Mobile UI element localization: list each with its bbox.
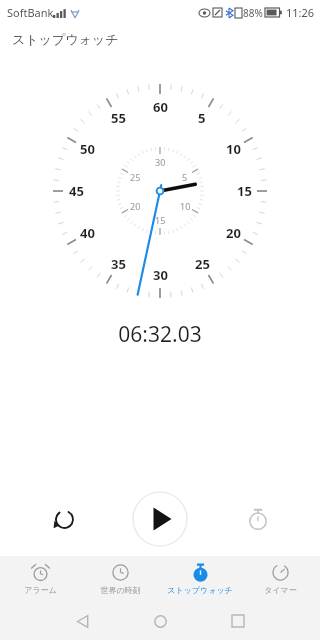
staticText: 25 [195,255,210,273]
staticText: 40 [80,224,95,242]
staticText: 30 [155,156,166,168]
staticText: ストップウォッチ [167,585,233,595]
staticText: 5 [198,109,206,127]
button[interactable]: Reset [42,497,86,541]
button[interactable]: ストップウォッチ [160,556,240,602]
staticText: 11:26 [286,5,315,20]
button[interactable]: 世界の時刻 [80,556,160,602]
staticText: タイマー [264,585,297,595]
staticText: アラーム [24,585,57,595]
staticText: 45 [69,182,84,200]
button[interactable]: Lap [236,497,280,541]
staticText: 55 [111,109,126,127]
staticText: 5 [182,171,188,183]
button[interactable]: Back [66,605,98,637]
staticText: 10 [180,200,191,212]
button[interactable]: Home [144,605,176,637]
staticText: 世界の時刻 [100,585,141,595]
button[interactable]: タイマー [240,556,320,602]
button[interactable]: Start [132,491,188,547]
staticText: 88% [243,6,263,20]
staticText: SoftBank [7,5,54,20]
button[interactable]: アラーム [0,556,80,602]
staticText: 06:32.03 [0,320,320,349]
staticText: 25 [130,171,141,183]
staticText: 20 [130,200,141,212]
staticText: 30 [153,266,168,284]
staticText: 20 [226,224,241,242]
button[interactable]: Recents [222,605,254,637]
staticText: 10 [226,140,241,158]
staticText: 35 [111,255,126,273]
staticText: 15 [237,182,252,200]
staticText: 15 [155,214,166,226]
staticText: 60 [153,98,168,116]
staticText: ストップウォッチ [12,31,119,47]
staticText: 50 [80,140,95,158]
